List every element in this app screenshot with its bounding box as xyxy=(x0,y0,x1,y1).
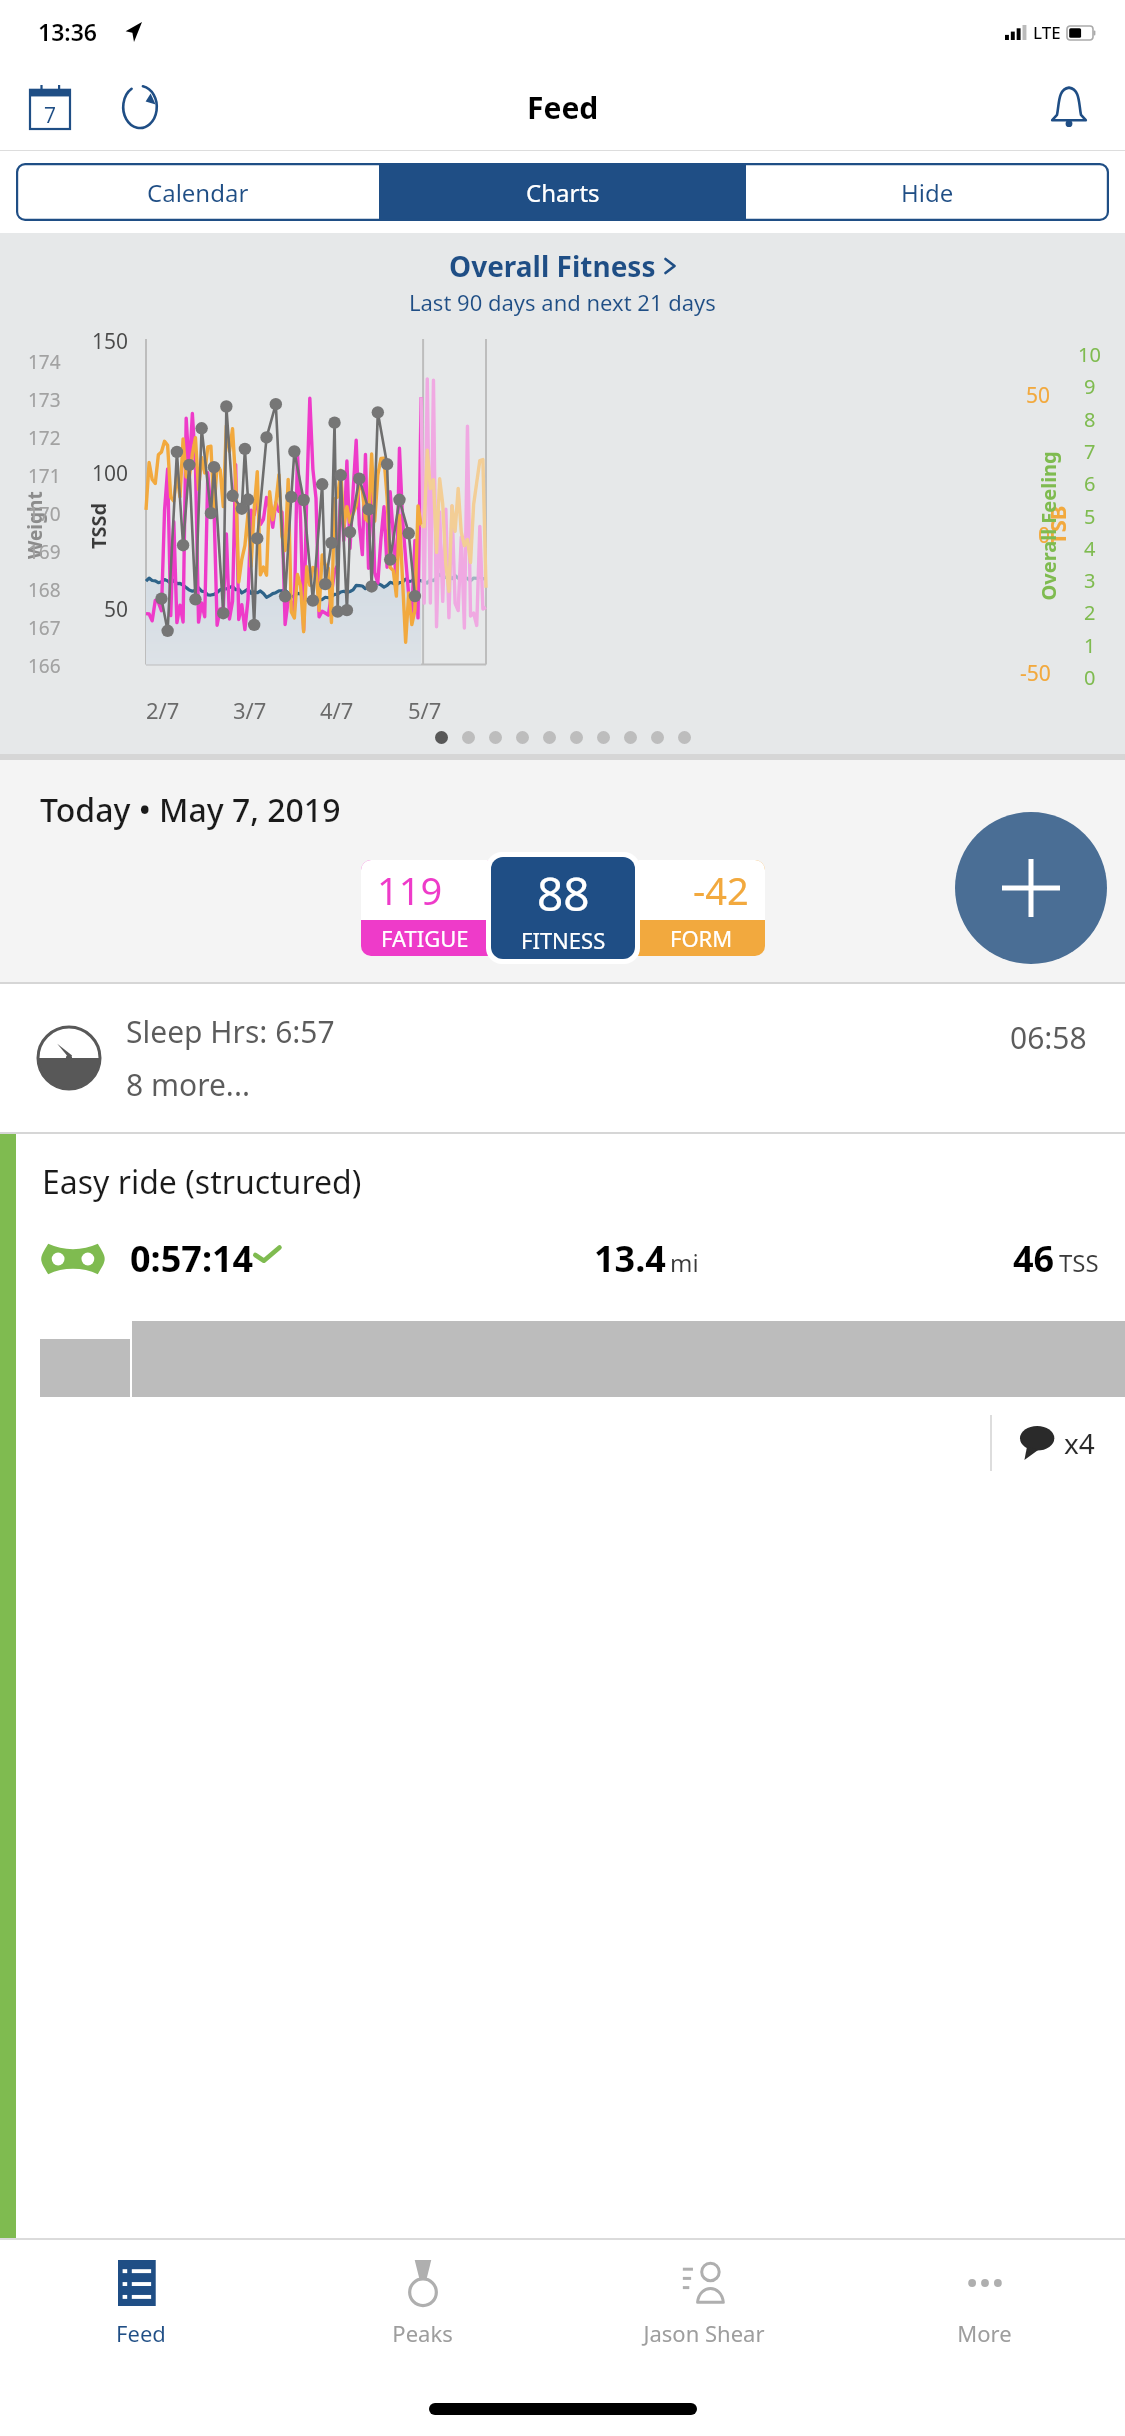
staticText: 2 xyxy=(1084,599,1096,626)
button[interactable] xyxy=(570,731,583,744)
staticText: 7 xyxy=(44,101,57,130)
staticText: 88 xyxy=(537,862,590,925)
staticText: FATIGUE xyxy=(381,923,469,953)
staticText: 6 xyxy=(1084,470,1096,497)
staticText: -42 xyxy=(693,864,749,916)
staticText: Hide xyxy=(901,176,954,209)
button[interactable]: Peaks xyxy=(282,2240,563,2368)
button[interactable] xyxy=(624,731,637,744)
staticText: 171 xyxy=(28,463,61,489)
button[interactable]: -42 xyxy=(629,860,765,956)
staticText: 0 xyxy=(1038,521,1051,550)
staticText: 13.4 xyxy=(594,1234,666,1283)
staticText: 150 xyxy=(92,327,129,356)
staticText: 172 xyxy=(28,425,61,451)
staticText: More xyxy=(957,2318,1012,2348)
button[interactable]: Jason Shear xyxy=(563,2240,844,2368)
staticText: 166 xyxy=(28,653,61,679)
staticText: Easy ride (structured) xyxy=(42,1160,362,1204)
staticText: 1 xyxy=(1084,632,1096,659)
staticText: Overall Fitness xyxy=(449,247,656,285)
button[interactable]: Sleep Hrs: 6:57 xyxy=(0,984,1125,1132)
staticText: mi xyxy=(670,1246,699,1279)
staticText: TSSd xyxy=(85,502,112,549)
staticText: Calendar xyxy=(147,176,249,209)
staticText: x4 xyxy=(1064,1424,1095,1462)
staticText: 8 more... xyxy=(126,1064,250,1105)
staticText: 9 xyxy=(1084,373,1096,400)
staticText: 169 xyxy=(28,539,61,565)
button[interactable]: Easy ride (structured) xyxy=(0,1134,1125,2238)
staticText: 173 xyxy=(28,387,61,413)
staticText: 119 xyxy=(377,864,443,916)
staticText: Feed xyxy=(116,2318,166,2348)
staticText: -50 xyxy=(1020,659,1051,688)
staticText: 06:58 xyxy=(1010,1017,1087,1058)
staticText: 0 xyxy=(1084,664,1096,691)
staticText: LTE xyxy=(1033,21,1061,44)
staticText: 3/7 xyxy=(233,695,267,725)
staticText: Peaks xyxy=(392,2318,453,2348)
button[interactable] xyxy=(678,731,691,744)
staticText: 13:36 xyxy=(38,16,97,47)
staticText: 46 xyxy=(1013,1234,1055,1283)
staticText: 167 xyxy=(28,615,61,641)
button[interactable] xyxy=(489,731,502,744)
staticText: 10 xyxy=(1078,341,1101,368)
staticText: 3 xyxy=(1084,567,1096,594)
button[interactable]: More xyxy=(844,2240,1125,2368)
staticText: Sleep Hrs: 6:57 xyxy=(126,1011,335,1052)
staticText: Overall Feeling xyxy=(1034,450,1061,600)
button[interactable] xyxy=(435,731,448,744)
staticText: 2/7 xyxy=(146,695,180,725)
staticText: Today • May 7, 2019 xyxy=(40,788,341,832)
staticText: Weight xyxy=(22,491,48,559)
staticText: Jason Shear xyxy=(643,2318,765,2348)
staticText: Charts xyxy=(526,176,600,209)
button[interactable]: Feed xyxy=(0,2240,282,2368)
button[interactable] xyxy=(651,731,664,744)
staticText: 50 xyxy=(1026,381,1051,410)
staticText: FORM xyxy=(670,923,733,953)
button[interactable]: Overall Fitness xyxy=(441,245,684,287)
staticText: 5/7 xyxy=(408,695,442,725)
staticText: TSS xyxy=(1059,1246,1099,1279)
button[interactable] xyxy=(543,731,556,744)
staticText: 5 xyxy=(1084,503,1096,530)
staticText: 4/7 xyxy=(320,695,354,725)
button[interactable]: 119 xyxy=(361,860,497,956)
button[interactable]: Notifications xyxy=(1037,75,1101,139)
staticText: TSB xyxy=(1042,505,1072,545)
staticText: Last 90 days and next 21 days xyxy=(409,287,716,317)
staticText: Feed xyxy=(527,87,599,128)
staticText: 170 xyxy=(28,501,61,527)
staticText: 168 xyxy=(28,577,61,603)
staticText: 8 xyxy=(1084,406,1096,433)
button[interactable]: 88 xyxy=(491,857,635,959)
staticText: 7 xyxy=(1084,438,1096,465)
staticText: 0:57:14 xyxy=(130,1234,254,1283)
staticText: 4 xyxy=(1084,535,1096,562)
staticText: 100 xyxy=(92,459,129,488)
button[interactable]: Charts xyxy=(381,163,744,221)
button[interactable]: Calendar xyxy=(22,79,78,135)
staticText: FITNESS xyxy=(521,925,606,955)
button[interactable]: Refresh xyxy=(108,75,172,139)
staticText: 174 xyxy=(28,349,61,375)
button[interactable] xyxy=(516,731,529,744)
button[interactable]: Calendar xyxy=(16,163,379,221)
button[interactable] xyxy=(462,731,475,744)
button[interactable]: Hide xyxy=(746,163,1109,221)
staticText: 50 xyxy=(104,595,129,624)
button[interactable]: Add xyxy=(955,812,1107,964)
button[interactable] xyxy=(597,731,610,744)
